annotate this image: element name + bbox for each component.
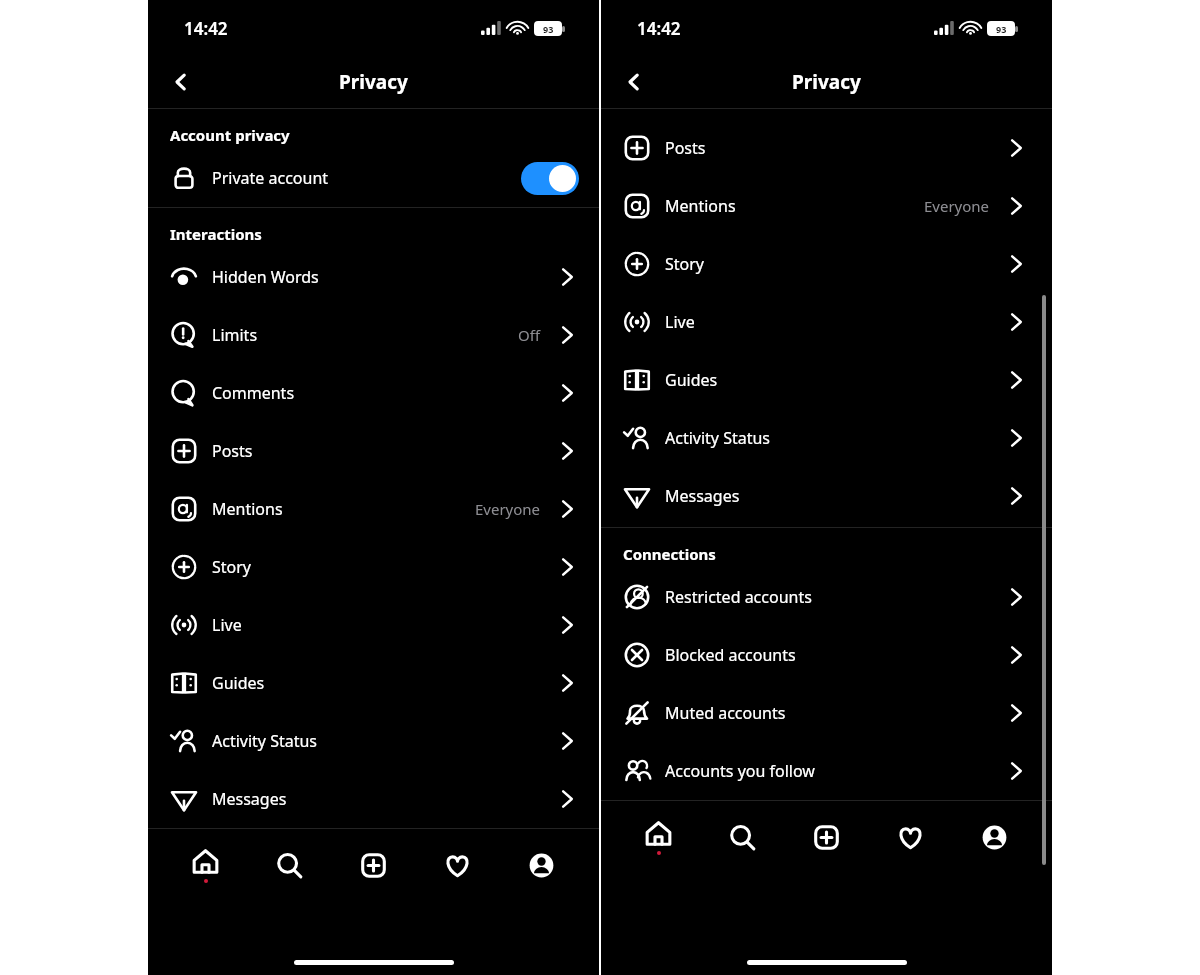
button[interactable]: Restricted accounts xyxy=(601,568,1052,626)
staticText: Posts xyxy=(665,137,706,159)
button[interactable]: Home xyxy=(617,801,700,873)
button[interactable]: Hidden Words xyxy=(148,248,599,306)
staticText: Live xyxy=(665,311,695,333)
button[interactable]: Guides xyxy=(601,351,1052,409)
staticText: 93 xyxy=(543,23,554,35)
staticText: Guides xyxy=(212,672,265,694)
button[interactable]: Activity xyxy=(868,801,952,873)
staticText: Mentions xyxy=(212,498,283,520)
staticText: Story xyxy=(665,253,705,275)
button[interactable]: Back xyxy=(617,65,651,99)
staticText: Off xyxy=(518,325,541,345)
button[interactable]: Profile xyxy=(499,829,583,901)
staticText: Guides xyxy=(665,369,718,391)
button[interactable]: Guides xyxy=(148,654,599,712)
staticText: 93 xyxy=(996,23,1007,35)
staticText: Restricted accounts xyxy=(665,586,812,608)
button[interactable]: Activity Status xyxy=(148,712,599,770)
button[interactable]: Back xyxy=(164,65,198,99)
staticText: Activity Status xyxy=(212,730,318,752)
staticText: Comments xyxy=(212,382,295,404)
button[interactable]: Blocked accounts xyxy=(601,626,1052,684)
button[interactable]: Mentions xyxy=(601,177,1052,235)
staticText: Accounts you follow xyxy=(665,760,815,782)
button[interactable]: Accounts you follow xyxy=(601,742,1052,800)
staticText: Account privacy xyxy=(170,125,290,145)
button[interactable]: Activity xyxy=(415,829,499,901)
button[interactable]: Messages xyxy=(148,770,599,828)
button[interactable]: Home xyxy=(164,829,247,901)
staticText: Limits xyxy=(212,324,258,346)
staticText: Everyone xyxy=(475,499,541,519)
staticText: Activity Status xyxy=(665,427,771,449)
staticText: Connections xyxy=(623,544,716,564)
button[interactable]: Create xyxy=(784,801,868,873)
button[interactable]: Mentions xyxy=(148,480,599,538)
button[interactable]: Live xyxy=(601,293,1052,351)
button[interactable]: Activity Status xyxy=(601,409,1052,467)
staticText: Everyone xyxy=(924,196,990,216)
staticText: 14:42 xyxy=(637,17,681,40)
button[interactable]: Posts xyxy=(148,422,599,480)
staticText: Privacy xyxy=(792,69,861,95)
button[interactable]: Story xyxy=(601,235,1052,293)
staticText: Muted accounts xyxy=(665,702,786,724)
button[interactable]: Create xyxy=(331,829,415,901)
button[interactable]: Limits xyxy=(148,306,599,364)
staticText: Mentions xyxy=(665,195,736,217)
button[interactable]: Live xyxy=(148,596,599,654)
staticText: Messages xyxy=(665,485,740,507)
staticText: Posts xyxy=(212,440,253,462)
button[interactable]: Private account xyxy=(148,149,599,207)
button[interactable]: Posts xyxy=(601,119,1052,177)
staticText: 14:42 xyxy=(184,17,228,40)
button[interactable]: Profile xyxy=(952,801,1036,873)
staticText: Messages xyxy=(212,788,287,810)
staticText: Privacy xyxy=(339,69,408,95)
button[interactable]: Muted accounts xyxy=(601,684,1052,742)
button[interactable]: Search xyxy=(700,801,784,873)
staticText: Blocked accounts xyxy=(665,644,796,666)
button[interactable]: Search xyxy=(247,829,331,901)
staticText: Interactions xyxy=(170,224,262,244)
button[interactable]: Story xyxy=(148,538,599,596)
staticText: Story xyxy=(212,556,252,578)
button[interactable]: Comments xyxy=(148,364,599,422)
staticText: Private account xyxy=(212,167,329,189)
button[interactable]: Messages xyxy=(601,467,1052,525)
staticText: Live xyxy=(212,614,242,636)
staticText: Hidden Words xyxy=(212,266,319,288)
